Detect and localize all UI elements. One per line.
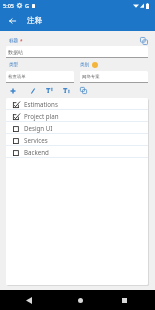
button[interactable]: Services <box>6 134 148 146</box>
staticText: Backend <box>24 148 49 156</box>
staticText: 网络专案 <box>82 74 100 80</box>
button[interactable]: Increase text size <box>44 85 61 96</box>
staticText: 5:05 <box>3 2 14 9</box>
staticText: Estimations <box>24 100 58 108</box>
button[interactable]: Add <box>10 85 27 96</box>
button[interactable]: Backend <box>6 146 148 158</box>
staticText: * <box>20 38 23 44</box>
staticText: 标题 <box>9 38 19 44</box>
button[interactable]: Design UI <box>6 122 148 134</box>
button[interactable]: Home <box>58 290 102 310</box>
button[interactable]: 检查清单 <box>6 71 74 83</box>
staticText: Project plan <box>24 112 59 120</box>
button[interactable]: Project plan <box>6 110 148 122</box>
button[interactable]: 网络专案 <box>80 71 148 83</box>
button[interactable]: Estimations <box>6 98 148 110</box>
button[interactable]: Copy <box>138 37 149 45</box>
staticText: G <box>25 2 29 9</box>
button[interactable]: Back <box>2 11 22 31</box>
button[interactable]: Draw <box>27 85 44 96</box>
staticText: 类别 <box>80 62 90 68</box>
button[interactable]: Duplicate <box>78 85 95 96</box>
button[interactable]: Back <box>0 290 58 310</box>
staticText: 类型 <box>9 62 19 68</box>
staticText: 注释 <box>27 16 43 26</box>
button[interactable]: Recent apps <box>102 290 146 310</box>
button[interactable]: 数据站 <box>6 46 148 58</box>
staticText: Design UI <box>24 124 53 132</box>
staticText: 数据站 <box>8 49 23 55</box>
button[interactable]: Decrease text size <box>61 85 78 96</box>
staticText: Services <box>24 136 48 144</box>
staticText: 检查清单 <box>8 74 26 80</box>
